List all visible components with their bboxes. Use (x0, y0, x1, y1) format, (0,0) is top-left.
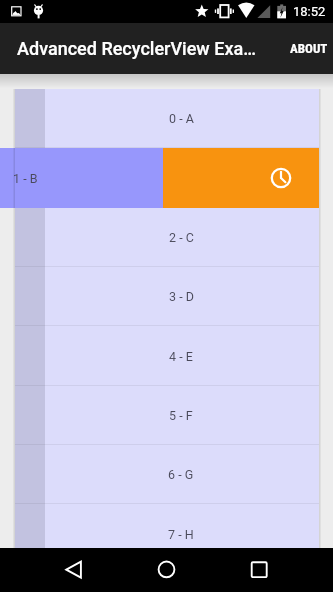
staticText: 3 - D (169, 289, 194, 304)
button[interactable]: Back (52, 548, 96, 592)
staticText: 7 - H (168, 527, 194, 542)
button[interactable]: 5 - F (15, 386, 319, 445)
staticText: ABOUT (290, 41, 328, 56)
button[interactable]: 2 - C (15, 208, 319, 267)
staticText: Advanced RecyclerView Exa… (17, 38, 275, 59)
button[interactable]: Pin to top (15, 148, 319, 208)
button[interactable]: Home (144, 548, 188, 592)
staticText: 6 - G (168, 467, 194, 482)
button[interactable]: 6 - G (15, 445, 319, 504)
button[interactable]: 4 - E (15, 326, 319, 386)
button[interactable]: 3 - D (15, 267, 319, 326)
staticText: 1 - B (13, 171, 38, 186)
staticText: 2 - C (169, 230, 194, 245)
button[interactable]: Recent apps (237, 548, 281, 592)
staticText: 5 - F (169, 408, 193, 423)
button[interactable]: 0 - A (15, 89, 319, 148)
staticText: 4 - E (169, 349, 193, 364)
staticText: 18:52 (293, 4, 326, 19)
button[interactable]: 1 - B (0, 148, 163, 208)
button[interactable]: ABOUT (275, 23, 333, 74)
staticText: 0 - A (169, 111, 194, 126)
button[interactable]: 7 - H (15, 504, 319, 548)
